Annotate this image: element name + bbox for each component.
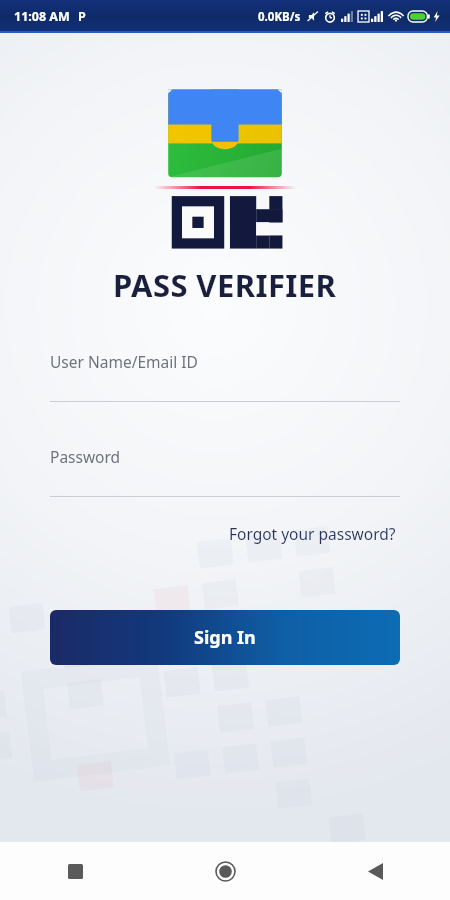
staticText: 0.0KB/s	[258, 9, 301, 25]
button[interactable]: Sign In	[50, 610, 400, 665]
staticText: Password	[50, 446, 121, 467]
staticText: User Name/Email ID	[50, 351, 198, 372]
staticText: Forgot your password?	[229, 523, 396, 544]
button[interactable]: Recent apps	[0, 842, 150, 900]
staticText: Sign In	[194, 625, 256, 650]
button[interactable]: Password	[50, 446, 400, 497]
button[interactable]: Back	[300, 842, 450, 900]
staticText: 11:08 AM	[14, 8, 70, 25]
button[interactable]: Home	[150, 842, 300, 900]
button[interactable]: Forgot your password?	[225, 519, 400, 548]
staticText: P	[78, 8, 86, 25]
button[interactable]: User Name/Email ID	[50, 351, 400, 402]
staticText: PASS VERIFIER	[113, 264, 337, 306]
